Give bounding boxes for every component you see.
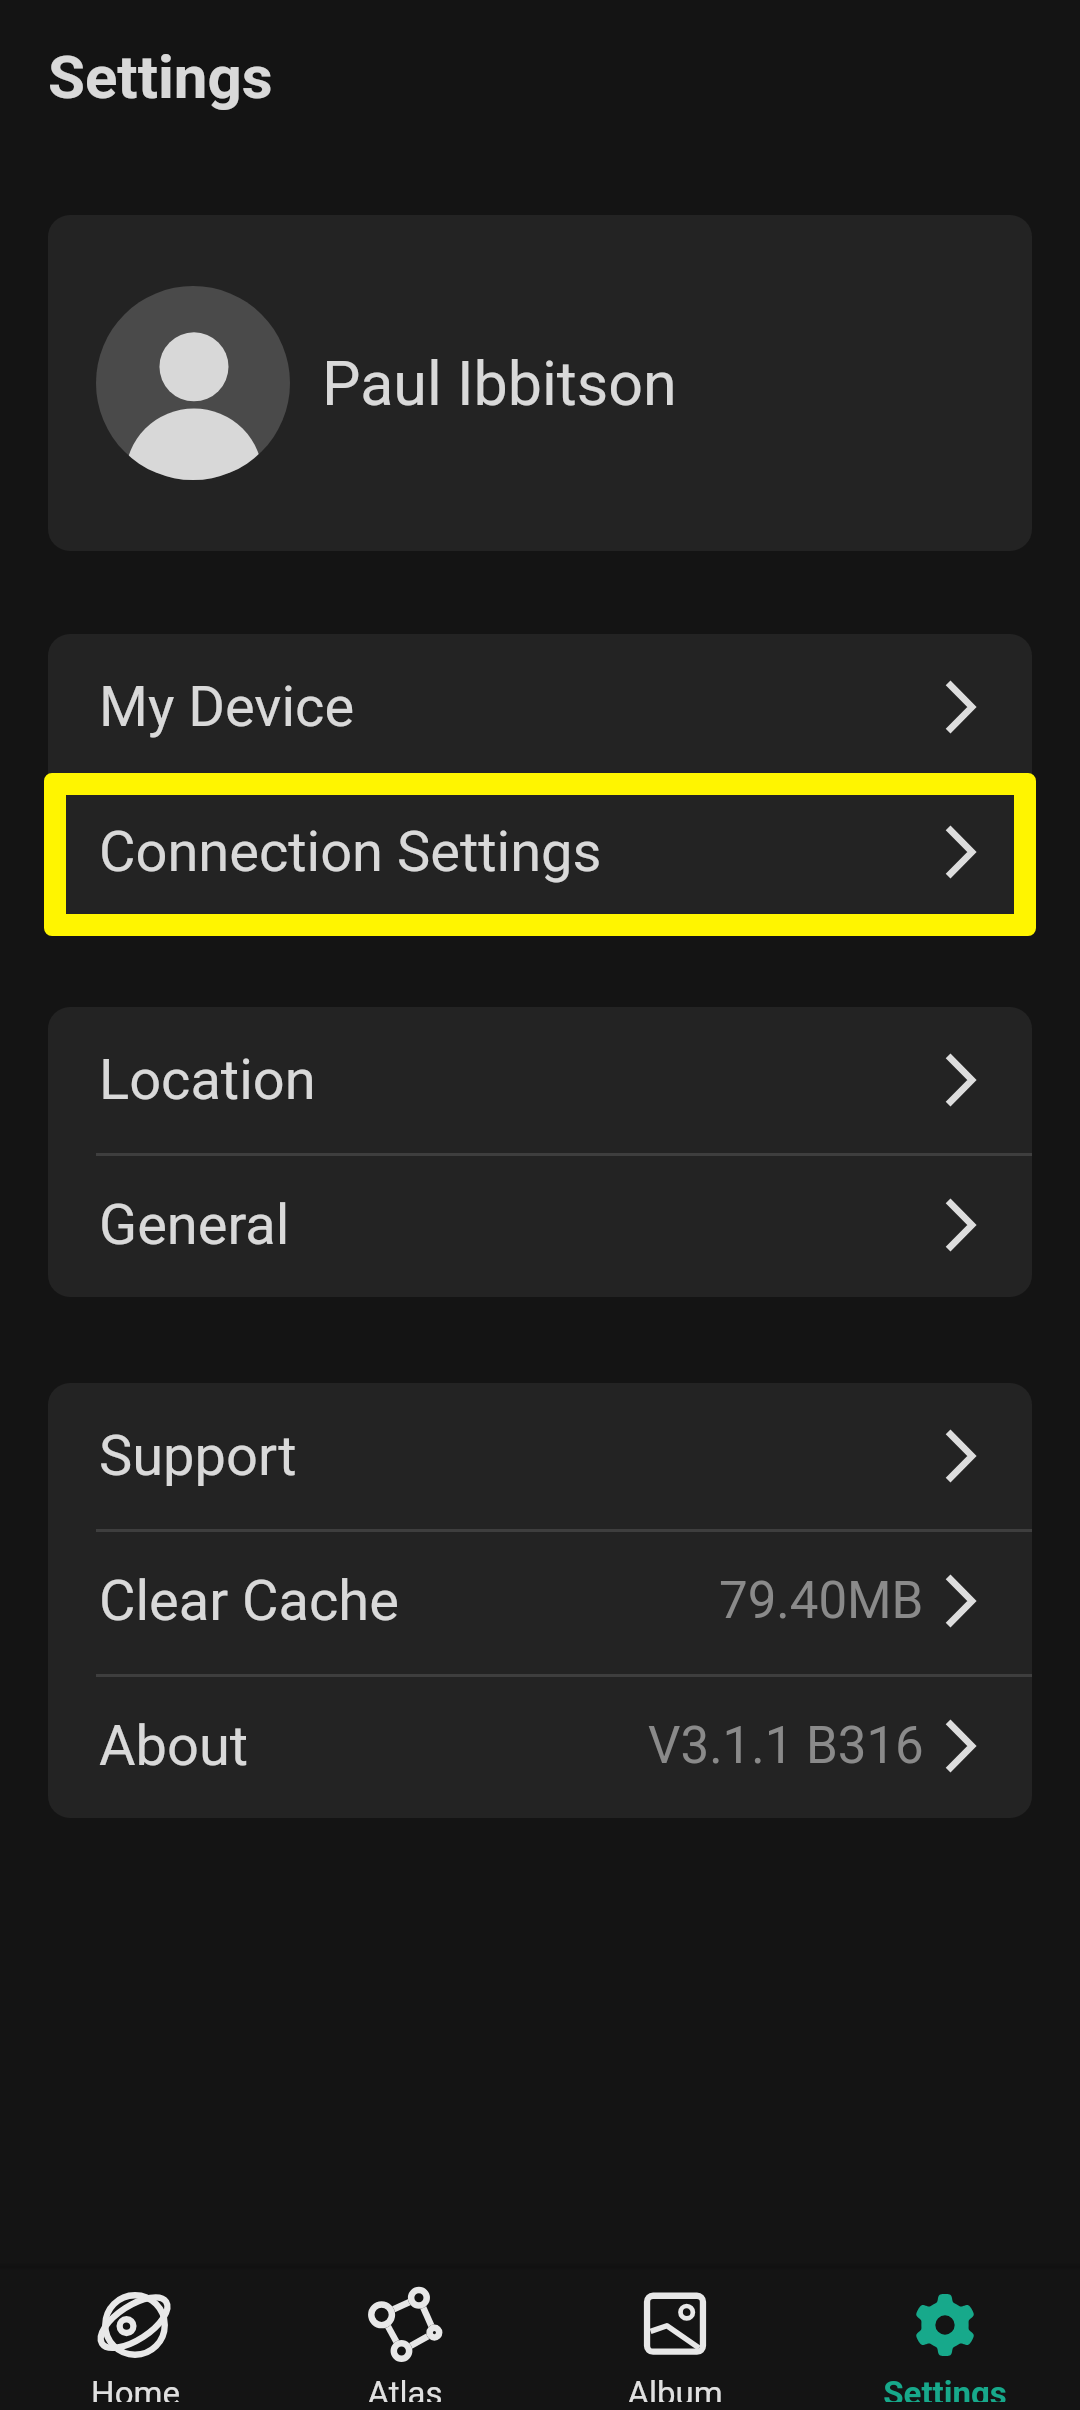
staticText: Atlas xyxy=(367,2374,443,2402)
button[interactable]: Connection Settings xyxy=(48,779,1032,924)
button[interactable]: About xyxy=(48,1673,1032,1818)
button[interactable]: My Device xyxy=(48,634,1032,779)
staticText: Location xyxy=(99,1047,316,1113)
staticText: Connection Settings xyxy=(99,819,602,885)
staticText: Home xyxy=(91,2374,180,2402)
button[interactable]: Home xyxy=(0,2262,270,2402)
staticText: Album xyxy=(627,2374,723,2402)
staticText: My Device xyxy=(99,674,355,740)
button[interactable]: Settings xyxy=(810,2262,1080,2402)
button[interactable]: Album xyxy=(540,2262,810,2402)
button[interactable]: Support xyxy=(48,1383,1032,1528)
button[interactable]: Atlas xyxy=(270,2262,540,2402)
staticText: Paul Ibbitson xyxy=(322,348,677,419)
staticText: Settings xyxy=(883,2374,1007,2402)
button[interactable]: General xyxy=(48,1152,1032,1297)
staticText: 79.40MB xyxy=(719,1571,924,1631)
staticText: General xyxy=(99,1192,290,1258)
staticText: Settings xyxy=(48,42,273,112)
staticText: Clear Cache xyxy=(99,1568,399,1634)
staticText: V3.1.1 B316 xyxy=(648,1716,924,1776)
button[interactable]: Paul Ibbitson xyxy=(48,215,1032,551)
staticText: Support xyxy=(99,1423,297,1489)
button[interactable]: Clear Cache xyxy=(48,1528,1032,1673)
button[interactable]: Location xyxy=(48,1007,1032,1152)
staticText: About xyxy=(99,1713,249,1779)
